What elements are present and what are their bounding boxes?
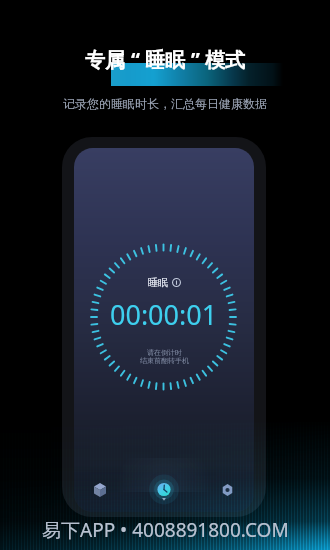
staticText: 记录您的睡眠时长，汇总每日健康数据 <box>63 96 267 111</box>
staticText: 请在倒计时 结束前翻转手机 <box>140 348 189 365</box>
button[interactable]: Settings <box>207 470 247 510</box>
staticText: “ <box>131 46 140 73</box>
staticText: 睡眠 <box>148 276 168 289</box>
staticText: 睡眠 <box>145 48 185 73</box>
button[interactable]: Sleep timer <box>144 470 184 510</box>
staticText: 易下APP • 4008891800.COM <box>42 517 289 543</box>
staticText: 模式 <box>205 48 245 73</box>
staticText: ” <box>191 46 200 73</box>
staticText: 00:00:01 <box>110 296 218 333</box>
button[interactable]: Models <box>80 470 120 510</box>
staticText: 专属 <box>85 48 125 73</box>
